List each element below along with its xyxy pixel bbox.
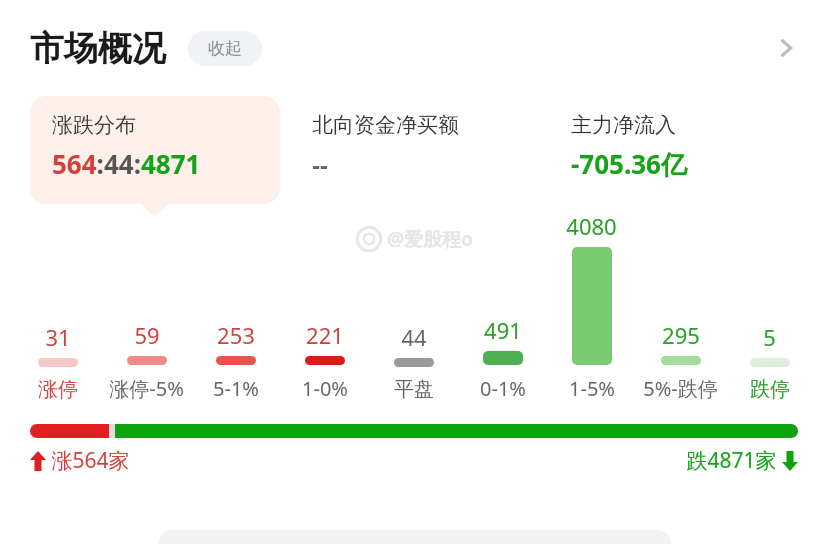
staticText: 44 <box>401 322 427 352</box>
staticText: 主力净流入 <box>571 112 676 138</box>
staticText: -- <box>312 148 328 181</box>
button[interactable]: 主力净流入 <box>549 96 798 204</box>
staticText: 5-1% <box>213 375 259 402</box>
staticText: 涨跌分布 <box>52 112 136 138</box>
staticText: -705.36亿 <box>571 146 687 182</box>
staticText: 295 <box>662 320 700 350</box>
staticText: 221 <box>306 320 344 350</box>
staticText: 跌4871家 <box>686 446 777 475</box>
staticText: 涨停 <box>38 377 78 402</box>
staticText: 涨564家 <box>51 446 130 475</box>
staticText: 5%-跌停 <box>643 375 718 402</box>
staticText: 31 <box>45 322 71 352</box>
staticText: 59 <box>134 320 160 350</box>
staticText: 收起 <box>208 38 242 59</box>
staticText: 1-5% <box>569 375 615 402</box>
staticText: 4080 <box>566 211 617 241</box>
staticText: 平盘 <box>394 377 434 402</box>
button[interactable] <box>30 424 798 438</box>
button[interactable]: 收起 <box>188 31 262 66</box>
staticText: 253 <box>217 320 255 350</box>
staticText: 跌停 <box>750 377 790 402</box>
button[interactable]: 北向资金净买额 <box>290 96 539 204</box>
button[interactable]: More <box>762 24 810 72</box>
staticText: 564:44:4871 <box>52 146 201 181</box>
staticText: 5 <box>763 322 776 352</box>
staticText: 北向资金净买额 <box>312 112 459 138</box>
staticText: @爱股程o <box>387 226 473 252</box>
button[interactable]: 涨跌分布 <box>30 96 280 204</box>
staticText: 491 <box>484 315 522 345</box>
staticText: 1-0% <box>302 375 348 402</box>
staticText: 涨停-5% <box>109 375 184 402</box>
staticText: 0-1% <box>480 375 526 402</box>
staticText: 市场概况 <box>30 27 166 70</box>
